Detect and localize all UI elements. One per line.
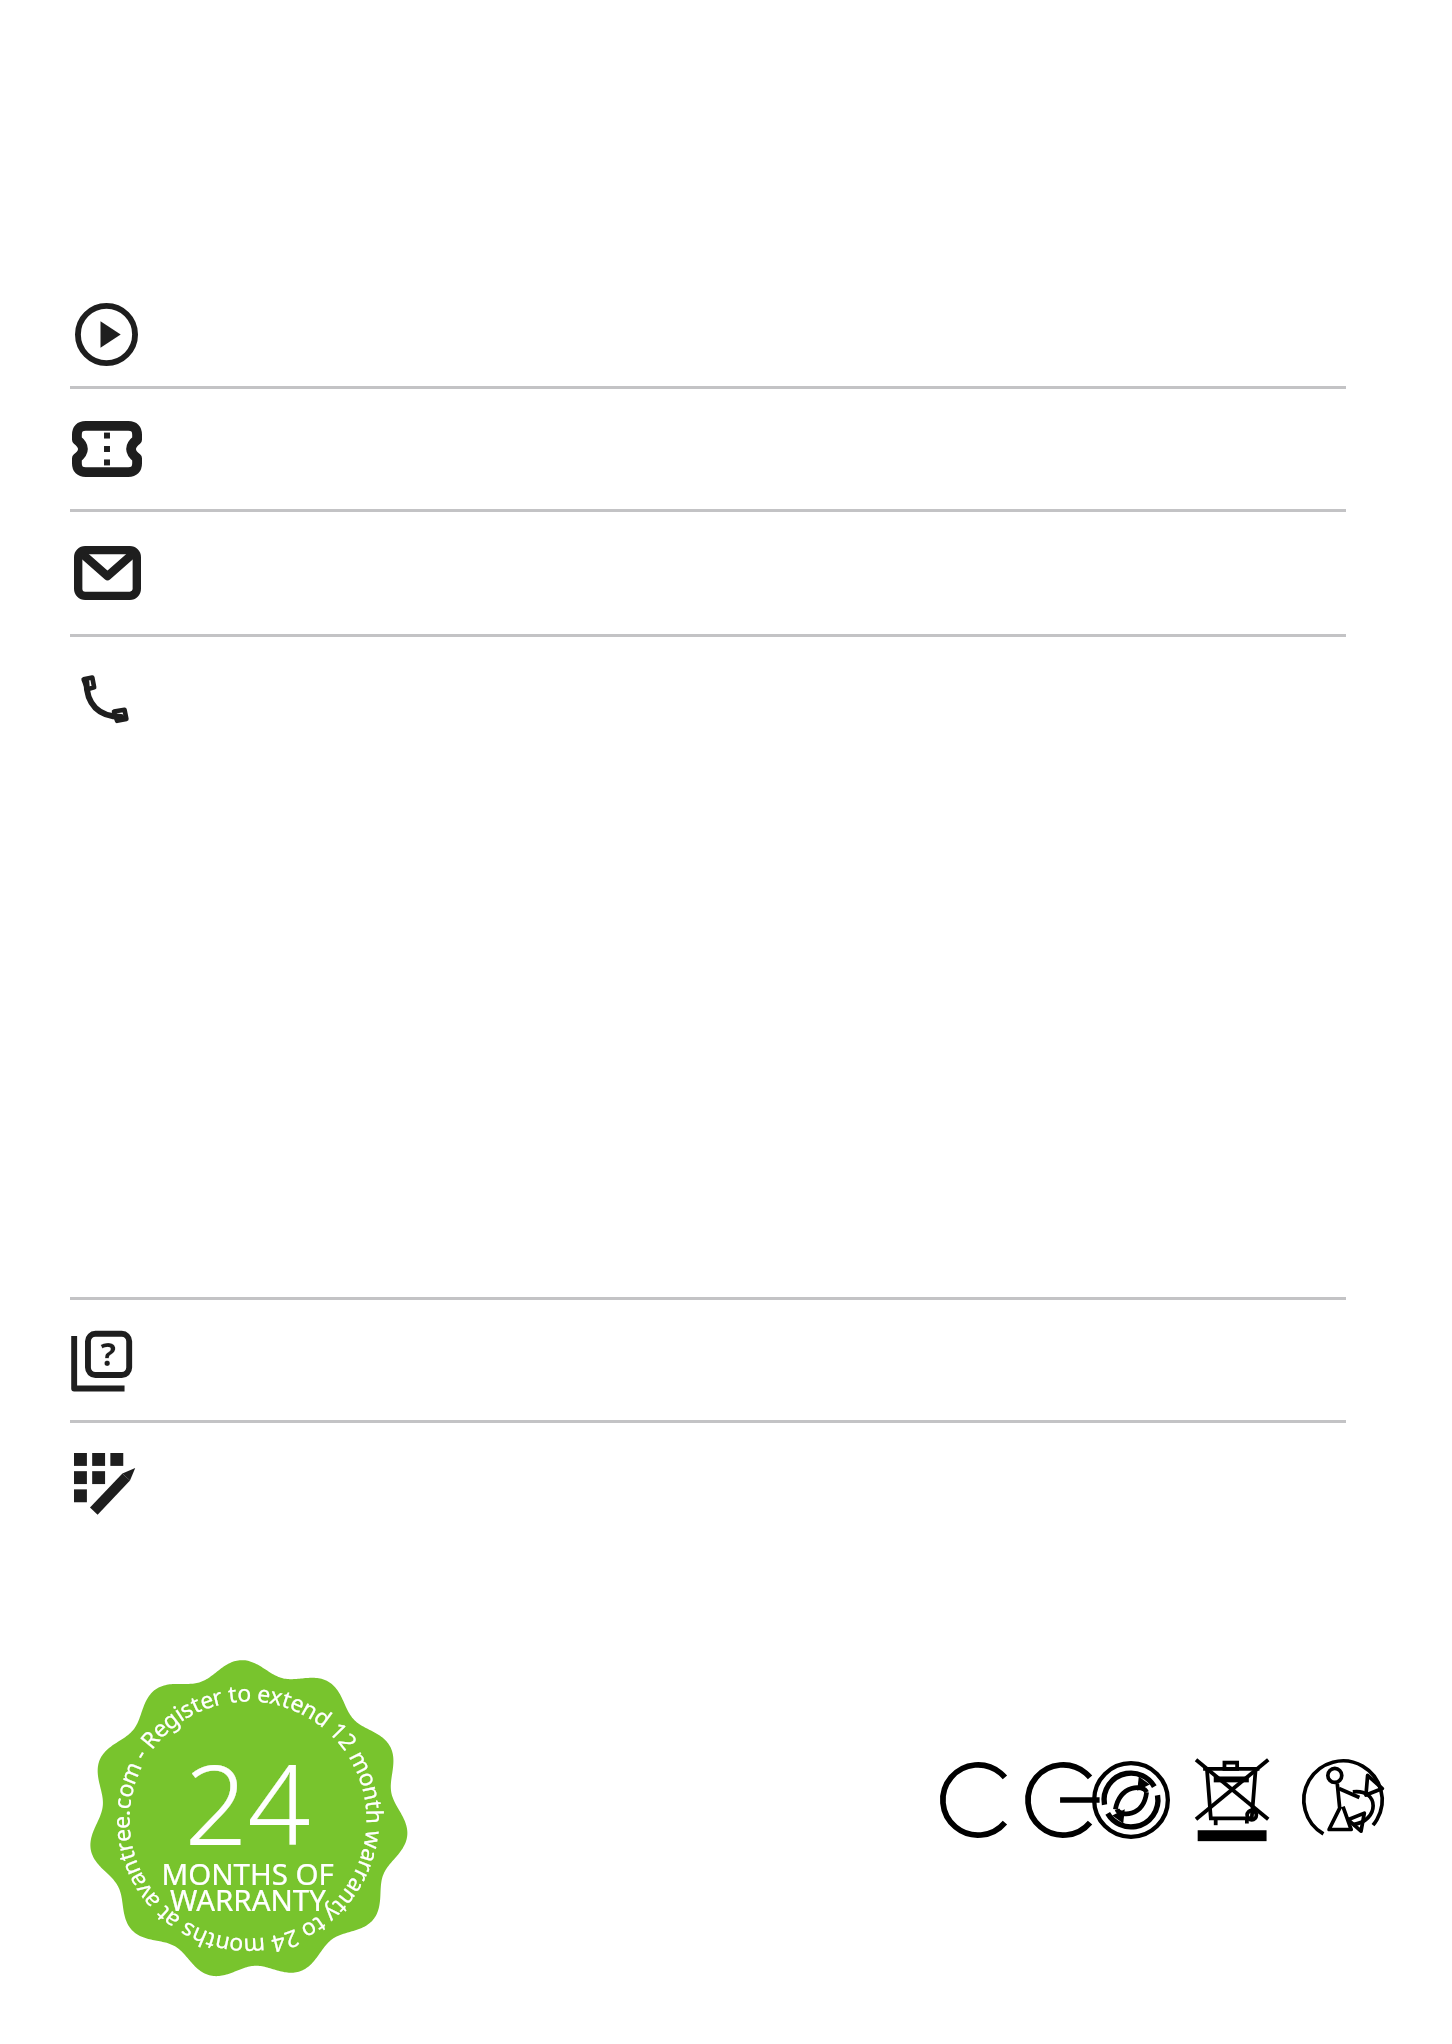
button[interactable]: Play video [0, 282, 1452, 386]
other: Green Dot recycling [1092, 1761, 1170, 1839]
other: FAQ [72, 1329, 134, 1391]
button[interactable]: Register product [0, 1423, 1452, 1543]
button[interactable]: Voucher [0, 389, 1452, 509]
other: Email us [74, 546, 141, 600]
button[interactable]: 24 months of warranty [88, 1660, 408, 1980]
button[interactable]: Email us [0, 512, 1452, 634]
other: Register product [74, 1453, 134, 1513]
other: Play video [75, 303, 138, 366]
button[interactable]: Call us [0, 637, 1452, 757]
other: CE mark [940, 1762, 1060, 1838]
other: WEEE do not dispose in household waste [1196, 1758, 1280, 1842]
other: Dispose of tidily [1302, 1759, 1384, 1841]
button[interactable]: FAQ [0, 1300, 1452, 1420]
other: Call us [74, 666, 136, 728]
other: Voucher [72, 421, 142, 477]
